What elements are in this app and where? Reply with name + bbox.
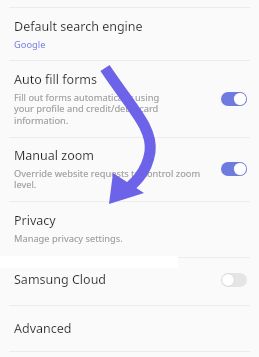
button[interactable]: Auto fill forms bbox=[0, 61, 259, 137]
staticText: Manual zoom bbox=[14, 147, 94, 164]
staticText: Manage privacy settings. bbox=[14, 232, 123, 245]
staticText: Auto fill forms bbox=[14, 71, 97, 88]
staticText: Google bbox=[14, 38, 46, 51]
button[interactable]: Samsung Cloud bbox=[0, 258, 259, 305]
button[interactable]: Default search engine bbox=[0, 8, 259, 60]
button[interactable]: Manual zoom bbox=[0, 138, 259, 201]
button[interactable]: Privacy bbox=[0, 202, 259, 257]
button[interactable]: Switch off bbox=[221, 273, 247, 287]
button[interactable]: Advanced bbox=[0, 306, 259, 351]
staticText: Privacy bbox=[14, 212, 56, 229]
staticText: Override website requests to control zoo… bbox=[14, 167, 201, 191]
staticText: Default search engine bbox=[14, 18, 143, 35]
staticText: Samsung Cloud bbox=[14, 271, 107, 288]
staticText: Fill out forms automatically using your … bbox=[14, 91, 160, 127]
staticText: Advanced bbox=[14, 320, 72, 337]
button[interactable]: Switch on bbox=[221, 162, 247, 176]
button[interactable]: Switch on bbox=[221, 92, 247, 106]
